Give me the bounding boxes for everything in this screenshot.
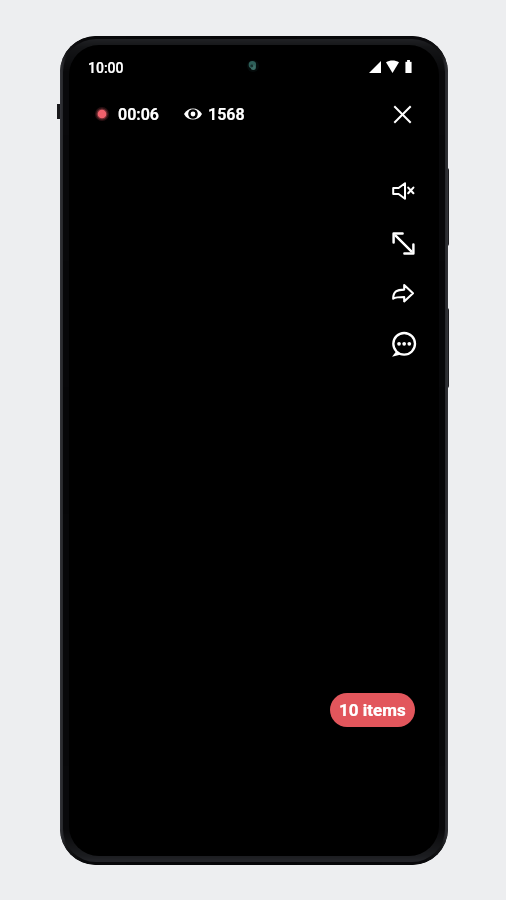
button[interactable]: Share (384, 274, 422, 312)
staticText: 00:06 (118, 105, 159, 124)
button[interactable]: Mute (384, 172, 422, 210)
button[interactable]: Full screen (384, 224, 422, 262)
staticText: 10:00 (88, 60, 124, 76)
button[interactable]: 10 items (330, 693, 415, 727)
button[interactable]: Comments (384, 326, 422, 364)
button[interactable]: Close (384, 96, 420, 132)
staticText: 1568 (208, 105, 245, 124)
staticText: 10 items (339, 700, 406, 720)
